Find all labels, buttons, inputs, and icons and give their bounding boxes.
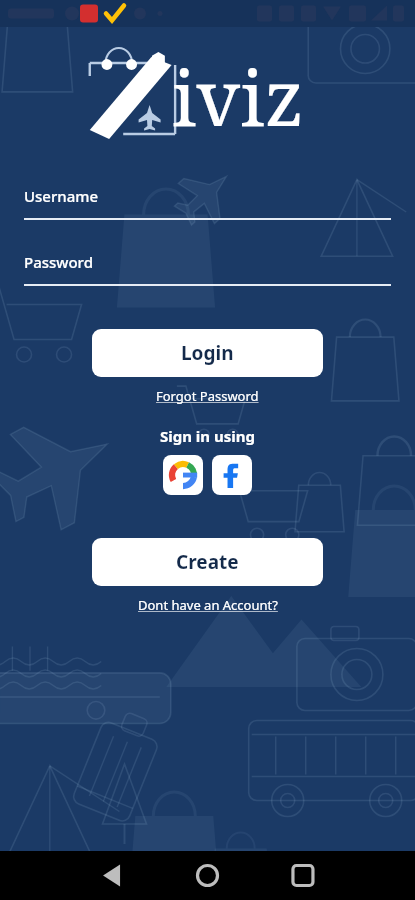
staticText: Forgot Password [156,387,259,405]
button[interactable]: Sign in with Facebook [212,455,252,495]
button[interactable]: Login [92,329,323,377]
button[interactable]: Sign in with Google [163,455,203,495]
button[interactable]: Create [92,538,323,586]
staticText: Login [181,340,234,366]
staticText: iviz [172,45,304,149]
staticText: Dont have an Account? [138,596,278,614]
staticText: Create [176,549,239,575]
staticText: Password [24,252,93,272]
button[interactable]: Forgot Password [150,385,265,407]
button[interactable]: Dont have an Account? [132,594,284,616]
staticText: Username [24,186,99,206]
staticText: Sign in using [0,426,415,446]
